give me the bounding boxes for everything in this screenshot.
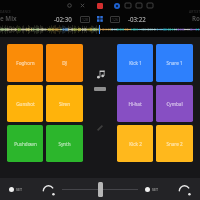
button[interactable]: Settings	[147, 3, 153, 8]
staticText: Gunshot	[16, 101, 35, 107]
button[interactable]: Snare 1	[156, 44, 193, 82]
staticText: SET	[16, 187, 23, 192]
button[interactable]: Record	[97, 3, 103, 9]
button[interactable]: Gunshot	[7, 85, 43, 122]
button[interactable]: 126	[112, 17, 118, 22]
button[interactable]: SET	[144, 186, 160, 193]
staticText: Snare 1	[166, 60, 183, 66]
staticText: -03:22	[128, 15, 146, 23]
button[interactable]: Sync	[114, 3, 120, 9]
button[interactable]: Pushdown	[7, 125, 43, 162]
button[interactable]: Effects	[80, 3, 85, 8]
button[interactable]: Mixer	[125, 3, 131, 8]
staticText: e Mix	[0, 14, 17, 22]
button[interactable]: Library	[136, 3, 142, 8]
staticText: 126	[112, 17, 118, 22]
button[interactable]: Siren	[46, 85, 83, 122]
button[interactable]: Loop	[67, 3, 72, 8]
button[interactable]: Jog knob	[41, 182, 56, 197]
button[interactable]: Kick 1	[117, 44, 153, 82]
staticText: Pushdown	[14, 141, 37, 147]
button[interactable]: Snare 2	[156, 125, 193, 162]
staticText: Synth	[58, 141, 71, 147]
button[interactable]: 128	[82, 17, 88, 22]
button[interactable]: Deck slider	[94, 87, 106, 91]
staticText: Snare 2	[166, 141, 183, 147]
button[interactable]: Jog knob	[177, 182, 192, 197]
staticText: Hi-hat	[128, 101, 142, 107]
button[interactable]: SET	[8, 186, 24, 193]
staticText: Foghorn	[16, 60, 35, 66]
staticText: ARTIST	[189, 10, 200, 14]
staticText: SET	[152, 187, 159, 192]
staticText: Ro	[192, 14, 200, 22]
staticText: Kick 2	[129, 141, 142, 147]
button[interactable]: Foghorn	[7, 44, 43, 82]
staticText: Siren	[59, 101, 70, 107]
button[interactable]: Beat grid	[97, 16, 103, 22]
staticText: DJ	[62, 60, 67, 66]
button[interactable]: Crossfader	[98, 182, 103, 197]
staticText: Kick 1	[129, 60, 142, 66]
staticText: -02:30	[54, 15, 72, 23]
staticText: Cymbal	[166, 101, 183, 107]
button[interactable]: Music library	[96, 70, 105, 79]
button[interactable]: Hi-hat	[117, 85, 153, 122]
button[interactable]: Edit	[96, 124, 104, 132]
staticText: 128	[82, 17, 88, 22]
button[interactable]: Synth	[46, 125, 83, 162]
button[interactable]: Kick 2	[117, 125, 153, 162]
button[interactable]: Cymbal	[156, 85, 193, 122]
staticText: DANCE	[0, 10, 11, 14]
button[interactable]: DJ	[46, 44, 83, 82]
